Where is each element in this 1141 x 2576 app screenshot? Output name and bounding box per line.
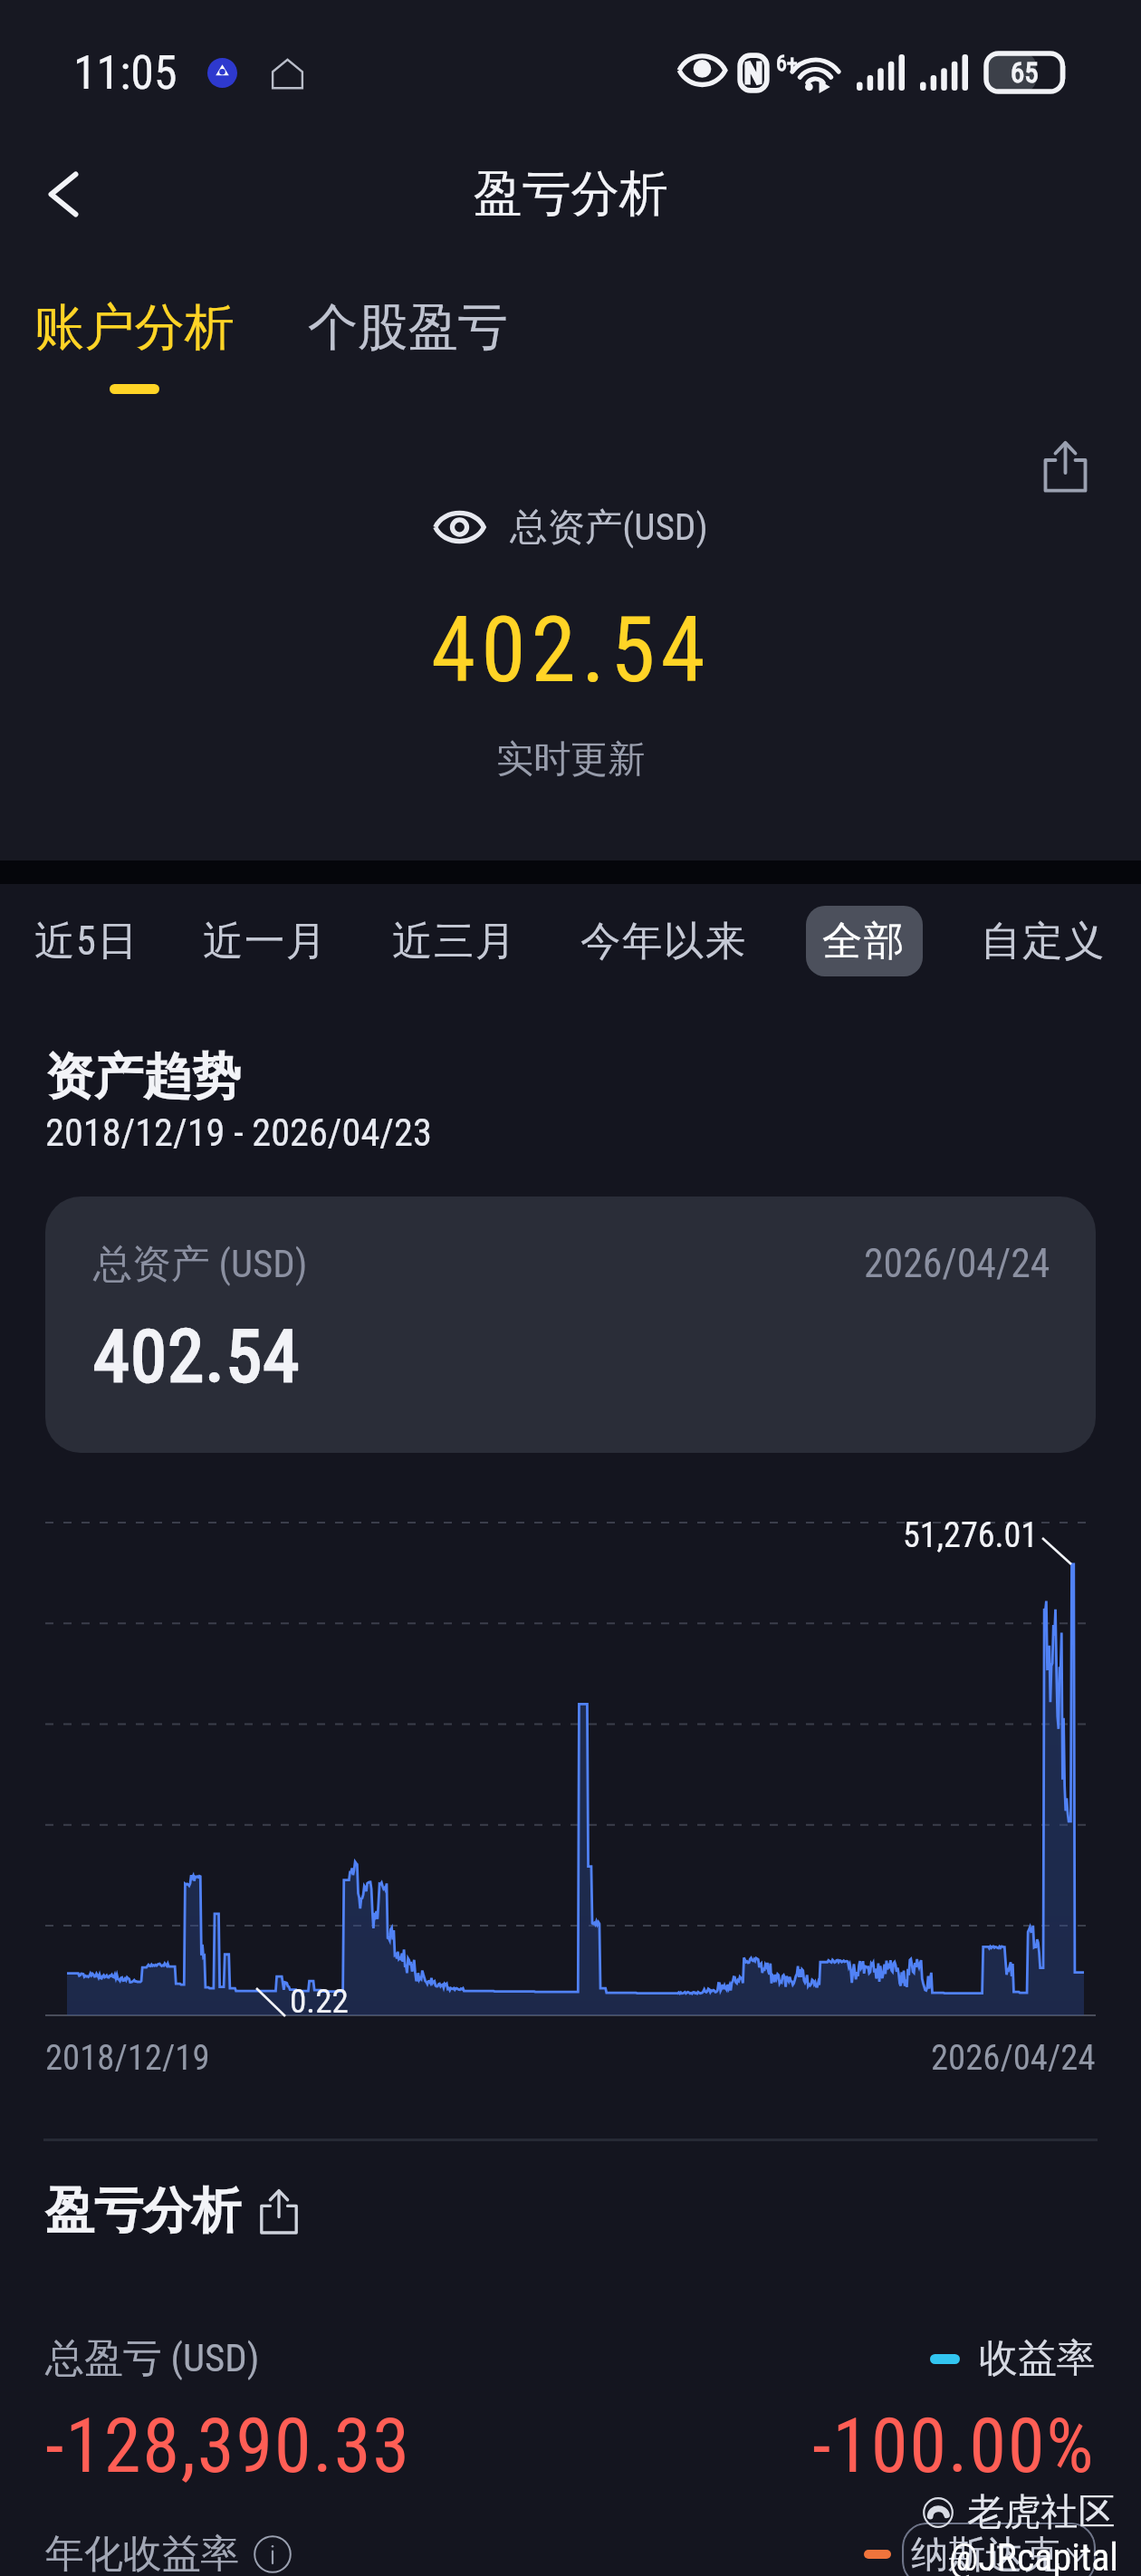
button[interactable]: 近三月 xyxy=(387,906,523,976)
staticText: 今年以来 xyxy=(580,916,748,966)
staticText: 2026/04/24 xyxy=(864,1240,1050,1286)
staticText: 65 xyxy=(1011,56,1039,89)
staticText: 402.54 xyxy=(431,597,711,703)
button[interactable]: Back xyxy=(9,139,118,248)
staticText: 6+ xyxy=(776,51,798,76)
staticText: 实时更新 xyxy=(496,735,646,783)
button[interactable]: 纳斯达克 xyxy=(902,2523,1096,2576)
staticText: 老虎社区 xyxy=(967,2489,1116,2535)
staticText: 2018/12/19 - 2026/04/23 xyxy=(45,1110,432,1156)
staticText: 总盈亏 (USD) xyxy=(45,2334,260,2383)
staticText: -128,390.33 xyxy=(45,2402,411,2490)
staticText: 年化收益率 xyxy=(45,2530,240,2576)
staticText: 全部 xyxy=(822,916,906,966)
staticText: 近三月 xyxy=(392,916,518,966)
staticText: 0.22 xyxy=(290,1981,349,2021)
staticText: 近一月 xyxy=(203,916,329,966)
button[interactable]: 账户分析 xyxy=(34,296,235,360)
button[interactable]: Share xyxy=(257,2188,301,2235)
staticText: 自定义 xyxy=(981,916,1107,966)
staticText: 收益率 xyxy=(979,2334,1096,2383)
button[interactable]: 全部 xyxy=(806,906,923,976)
staticText: 总资产 (USD) xyxy=(93,1240,308,1289)
staticText: 402.54 xyxy=(93,1313,301,1399)
button[interactable]: Share xyxy=(1013,415,1117,518)
staticText: 纳斯达克 xyxy=(911,2531,1060,2576)
staticText: 盈亏分析 xyxy=(474,163,668,225)
button[interactable]: 自定义 xyxy=(975,906,1112,976)
button[interactable]: 近5日 xyxy=(29,906,145,976)
staticText: 总资产(USD) xyxy=(510,504,708,551)
staticText: 近5日 xyxy=(34,916,139,966)
staticText: 资产趋势 xyxy=(45,1046,241,1108)
staticText: 盈亏分析 xyxy=(45,2180,241,2242)
staticText: 2018/12/19 xyxy=(45,2037,210,2078)
button[interactable]: 近一月 xyxy=(197,906,334,976)
button[interactable]: 个股盈亏 xyxy=(308,296,508,360)
staticText: @JRcapital xyxy=(949,2535,1118,2576)
staticText: 51,276.01 xyxy=(903,1515,1039,1556)
staticText: 11:05 xyxy=(73,45,177,101)
button[interactable]: 今年以来 xyxy=(575,906,753,976)
staticText: 2026/04/24 xyxy=(931,2037,1096,2078)
staticText: -100.00% xyxy=(812,2402,1096,2490)
